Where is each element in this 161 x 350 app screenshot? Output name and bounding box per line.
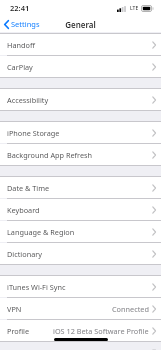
staticText: Connected (112, 304, 149, 314)
staticText: 22:41 (10, 3, 30, 13)
staticText: Settings (11, 19, 40, 29)
staticText: CarPlay (7, 62, 33, 72)
staticText: Date & Time (7, 183, 50, 193)
staticText: iTunes Wi-Fi Sync (7, 282, 66, 292)
button[interactable]: Dictionary (0, 243, 161, 264)
staticText: VPN (7, 304, 22, 314)
button[interactable]: iPhone Storage (0, 122, 161, 143)
button[interactable]: Handoff (0, 34, 161, 55)
button[interactable]: VPN (0, 298, 161, 319)
staticText: Keyboard (7, 205, 40, 215)
button[interactable]: Settings (0, 16, 45, 32)
button[interactable]: Accessibility (0, 89, 161, 110)
button[interactable]: Keyboard (0, 199, 161, 220)
staticText: iOS 12 Beta Software Profile (53, 326, 149, 336)
staticText: Accessibility (7, 95, 49, 105)
button[interactable]: Date & Time (0, 177, 161, 198)
button[interactable]: iTunes Wi-Fi Sync (0, 276, 161, 297)
button[interactable]: CarPlay (0, 56, 161, 77)
staticText: Profile (7, 326, 30, 336)
staticText: Dictionary (7, 249, 42, 259)
button[interactable]: Background App Refresh (0, 144, 161, 165)
staticText: LTE (130, 5, 139, 12)
staticText: Language & Region (7, 227, 75, 237)
staticText: General (65, 19, 96, 30)
button[interactable]: Language & Region (0, 221, 161, 242)
staticText: iPhone Storage (7, 128, 60, 138)
staticText: Background App Refresh (7, 150, 93, 160)
staticText: Handoff (7, 40, 35, 50)
button[interactable]: Profile (0, 320, 161, 341)
